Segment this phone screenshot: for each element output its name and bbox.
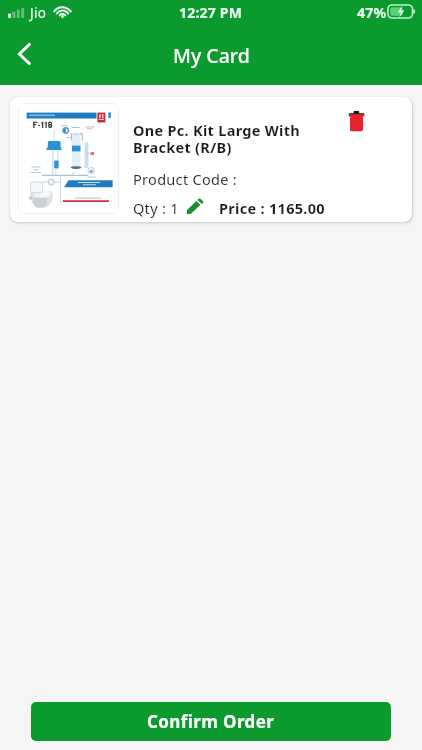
staticText: Jio	[30, 4, 47, 22]
button[interactable]: Back	[4, 34, 44, 74]
staticText: Qty : 1	[133, 198, 179, 218]
staticText: One Pc. Kit Large With Bracket (R/B)	[133, 120, 323, 157]
staticText: Confirm Order	[147, 710, 275, 733]
staticText: My Card	[173, 42, 250, 69]
staticText: 12:27 PM	[179, 3, 243, 22]
button[interactable]: One Pc. Kit Large With Bracket (R/B)	[10, 97, 412, 222]
staticText: 47%	[357, 3, 387, 22]
button[interactable]: Confirm Order	[31, 702, 391, 741]
button[interactable]: Edit quantity	[186, 198, 204, 215]
staticText: Price : 1165.00	[219, 198, 325, 218]
button[interactable]: Delete item	[344, 108, 368, 137]
staticText: Product Code :	[133, 169, 237, 189]
